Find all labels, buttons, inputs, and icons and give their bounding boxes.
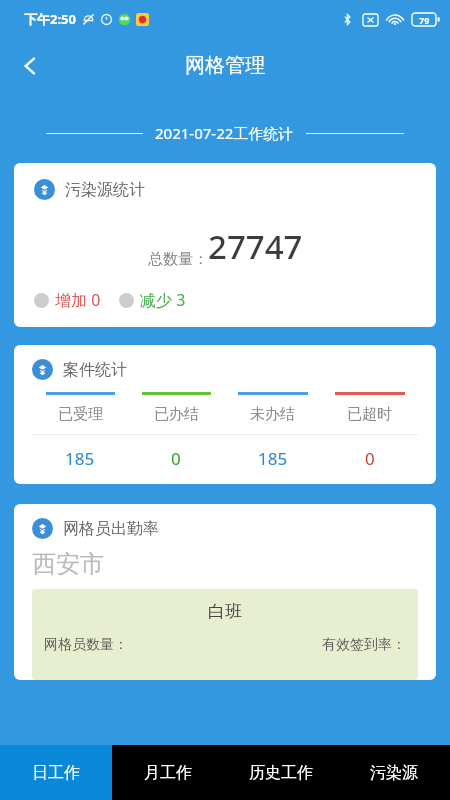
staticText: 历史工作 bbox=[249, 763, 313, 783]
staticText: 污染源统计 bbox=[65, 180, 145, 200]
staticText: 27747 bbox=[208, 224, 303, 269]
staticText: 减少 3 bbox=[140, 289, 186, 311]
staticText: 0 bbox=[365, 447, 375, 470]
button[interactable]: 案件统计 bbox=[14, 345, 436, 484]
staticText: 已办结 bbox=[154, 405, 199, 424]
staticText: 网格员数量： bbox=[44, 636, 128, 654]
button[interactable]: Back bbox=[8, 44, 52, 88]
staticText: 白班 bbox=[44, 601, 406, 622]
button[interactable]: 污染源统计 bbox=[14, 163, 436, 327]
staticText: 185 bbox=[65, 447, 95, 470]
staticText: 案件统计 bbox=[63, 360, 127, 380]
staticText: 79 bbox=[419, 14, 430, 26]
staticText: 日工作 bbox=[32, 763, 80, 783]
staticText: 0 bbox=[171, 447, 181, 470]
staticText: 已受理 bbox=[58, 405, 103, 424]
staticText: 网格管理 bbox=[185, 53, 265, 78]
staticText: 2021-07-22工作统计 bbox=[155, 123, 294, 143]
button[interactable]: 日工作 bbox=[0, 745, 112, 800]
staticText: 185 bbox=[258, 447, 288, 470]
staticText: 西安市 bbox=[32, 549, 104, 579]
staticText: 总数量： bbox=[148, 250, 208, 269]
staticText: 增加 0 bbox=[55, 289, 101, 311]
staticText: 下午2:50 bbox=[24, 10, 76, 28]
staticText: 未办结 bbox=[250, 405, 295, 424]
button[interactable]: 历史工作 bbox=[224, 745, 337, 800]
staticText: 月工作 bbox=[144, 763, 192, 783]
button[interactable]: 月工作 bbox=[112, 745, 224, 800]
button[interactable]: 网格员出勤率 bbox=[14, 504, 436, 680]
staticText: 污染源 bbox=[370, 763, 418, 783]
staticText: 有效签到率： bbox=[322, 636, 406, 654]
staticText: 网格员出勤率 bbox=[63, 519, 159, 539]
staticText: 已超时 bbox=[347, 405, 392, 424]
button[interactable]: 污染源 bbox=[337, 745, 450, 800]
